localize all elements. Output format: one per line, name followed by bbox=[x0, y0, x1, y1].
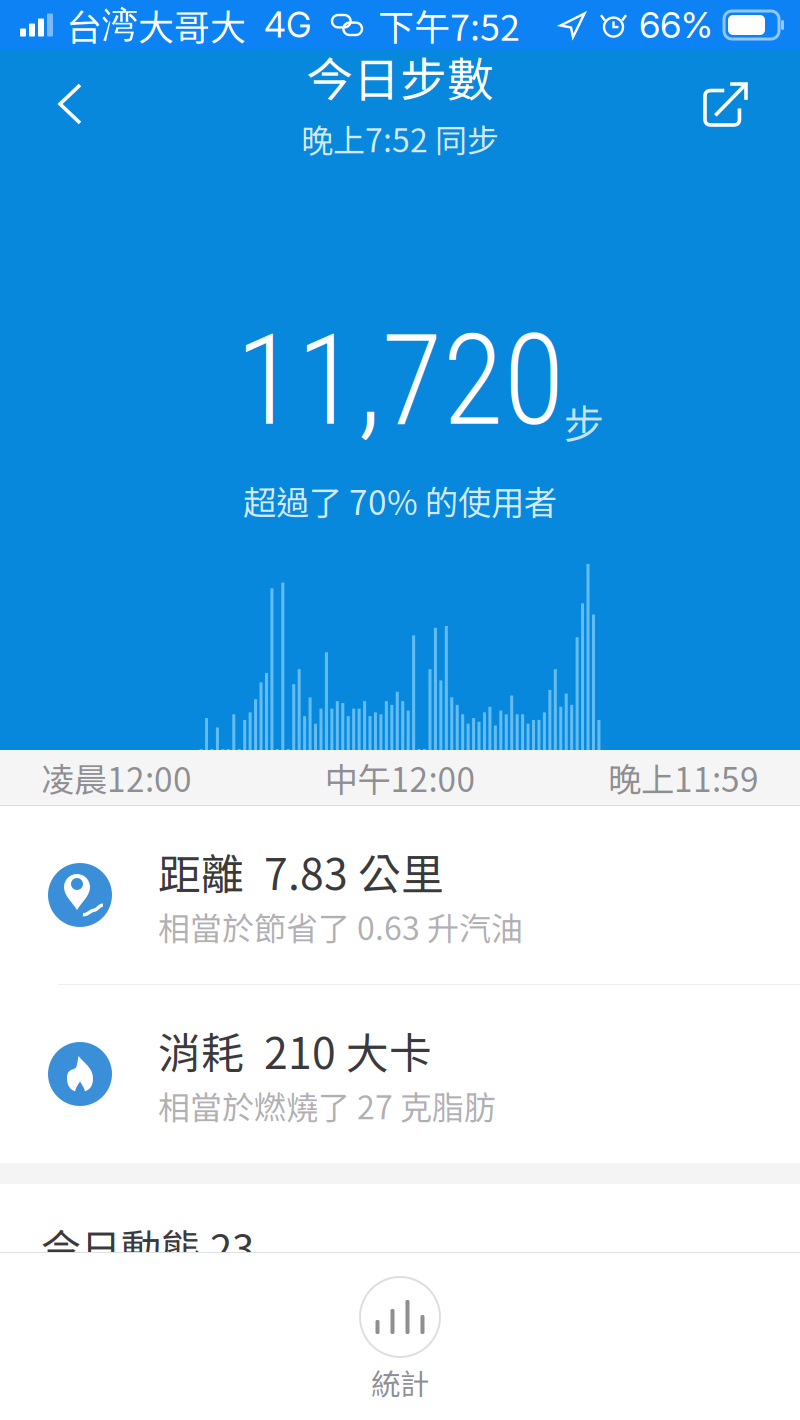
staticText: 統計 bbox=[371, 1361, 429, 1403]
staticText: 消耗 210 大卡 bbox=[158, 1019, 432, 1081]
staticText: 中午12:00 bbox=[324, 753, 475, 802]
button[interactable]: 統計 bbox=[360, 1253, 440, 1403]
staticText: 66% bbox=[639, 3, 713, 47]
button[interactable]: 消耗 210 大卡 bbox=[0, 985, 800, 1163]
button[interactable]: Share bbox=[671, 59, 800, 149]
staticText: 晚上11:59 bbox=[608, 753, 759, 802]
staticText: 距離 7.83 公里 bbox=[158, 840, 444, 902]
button[interactable]: Back bbox=[0, 59, 114, 149]
staticText: 今日動態 23 bbox=[41, 1217, 254, 1275]
staticText: 4G bbox=[264, 4, 312, 46]
staticText: 相當於節省了 0.63 升汽油 bbox=[158, 903, 523, 949]
staticText: 11,720 bbox=[235, 307, 564, 454]
staticText: 凌晨12:00 bbox=[41, 753, 192, 802]
staticText: 今日步數 bbox=[306, 42, 494, 110]
button[interactable]: 距離 7.83 公里 bbox=[0, 806, 800, 984]
staticText: 下午7:52 bbox=[378, 0, 520, 51]
staticText: 超過了 70% 的使用者 bbox=[243, 476, 557, 525]
staticText: 台湾大哥大 bbox=[66, 0, 246, 51]
staticText: 步 bbox=[564, 392, 604, 450]
staticText: 相當於燃燒了 27 克脂肪 bbox=[158, 1082, 496, 1128]
staticText: 晚上7:52 同步 bbox=[301, 115, 499, 161]
